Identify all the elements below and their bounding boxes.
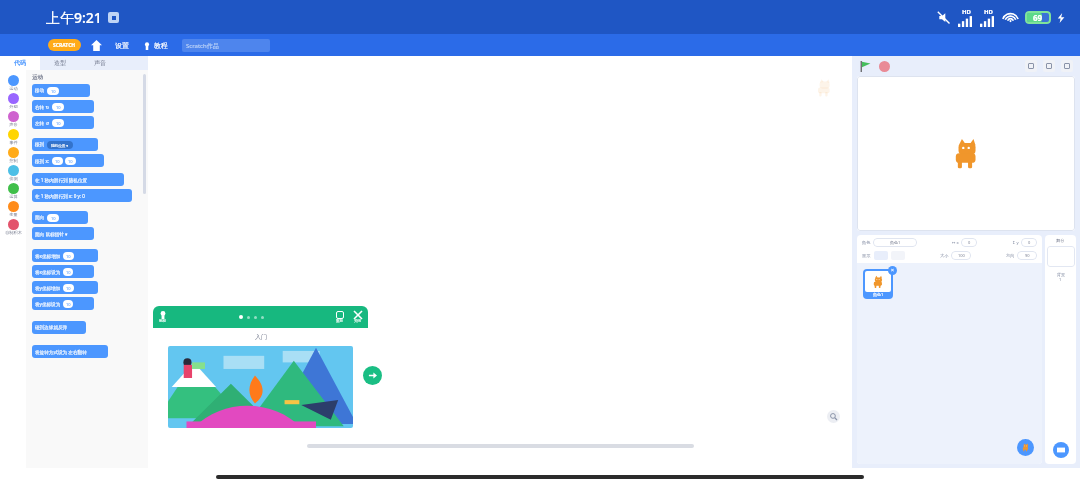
button[interactable]: 将x坐标设为 — [35, 265, 91, 278]
button[interactable]: 0 — [1021, 238, 1037, 247]
button[interactable]: 在 1 秒内滑行到 x: 0 y: 0 — [35, 189, 129, 202]
button[interactable]: Large stage — [1043, 60, 1055, 72]
staticText: 90 — [1025, 253, 1030, 258]
button[interactable]: Fullscreen — [1061, 60, 1073, 72]
button[interactable]: 左转 ↺ — [35, 116, 91, 129]
staticText: HD — [962, 8, 971, 16]
button[interactable]: 将y坐标设为 — [35, 297, 91, 310]
staticText: 显示 — [862, 253, 871, 258]
staticText: 教程 — [154, 41, 168, 50]
button[interactable]: 自制积木 — [0, 219, 26, 235]
staticText: 背景 — [1057, 272, 1065, 277]
staticText: 移到 x: — [35, 158, 50, 164]
button[interactable]: Small stage — [1025, 60, 1037, 72]
button[interactable]: 90 — [1017, 251, 1037, 260]
button[interactable]: 移动 — [35, 84, 87, 97]
staticText: 设置 — [115, 41, 129, 50]
button[interactable]: Close — [354, 311, 362, 324]
button[interactable]: 侦测 — [0, 165, 26, 181]
button[interactable]: 移到 — [35, 138, 95, 151]
button[interactable]: Stop — [879, 61, 890, 72]
button[interactable]: 0 — [961, 238, 977, 247]
staticText: 入门 — [255, 333, 267, 341]
staticText: 将y坐标增加 — [35, 285, 61, 291]
staticText: 0 — [968, 240, 971, 245]
staticText: 关闭 — [354, 319, 362, 324]
button[interactable]: 外观 — [0, 93, 26, 109]
button[interactable]: 右转 ↻ — [35, 100, 91, 113]
staticText: HD — [984, 8, 993, 16]
button[interactable]: 在 1 秒内滑行到 随机位置 — [35, 173, 121, 186]
button[interactable]: Zoom — [827, 410, 840, 423]
button[interactable]: Restart — [336, 311, 344, 324]
button[interactable]: 碰到边缘就反弹 — [35, 321, 83, 334]
staticText: 1 — [1059, 277, 1062, 282]
staticText: 角色1 — [873, 292, 884, 297]
button[interactable]: 将x坐标增加 — [35, 249, 95, 262]
staticText: 10 — [66, 302, 71, 307]
button[interactable]: 将y坐标增加 — [35, 281, 95, 294]
button[interactable]: Delete — [888, 266, 897, 275]
button[interactable]: Home — [89, 38, 103, 52]
staticText: 运算 — [9, 194, 18, 199]
button[interactable]: 造型 — [40, 56, 80, 70]
staticText: ↔ x — [952, 240, 959, 246]
button[interactable] — [1047, 246, 1075, 267]
staticText: 移动 — [35, 88, 45, 94]
staticText: × — [891, 267, 894, 274]
button[interactable]: Scratch作品 — [186, 39, 266, 52]
button[interactable]: 运动 — [0, 75, 26, 91]
staticText: 10 — [56, 121, 61, 126]
staticText: 重新 — [336, 319, 344, 324]
button[interactable]: 变量 — [0, 201, 26, 217]
staticText: 10 — [51, 89, 56, 94]
staticText: 左转 ↺ — [35, 120, 50, 126]
button[interactable]: SCRATCH — [48, 39, 81, 51]
staticText: 控制 — [9, 158, 18, 163]
button[interactable]: 移到 x: — [35, 154, 101, 167]
button[interactable]: Go — [859, 60, 872, 73]
staticText: 角色 — [862, 240, 871, 245]
staticText: 10 — [56, 105, 61, 110]
button[interactable]: 声音 — [80, 56, 120, 70]
button[interactable]: 面向 鼠标指针 ▾ — [35, 227, 91, 240]
staticText: ↕ y — [1012, 240, 1019, 246]
staticText: Scratch作品 — [186, 42, 219, 50]
button[interactable]: 代码 — [0, 56, 40, 70]
staticText: 造型 — [54, 59, 66, 67]
button[interactable]: Add backdrop — [1053, 442, 1069, 458]
staticText: 外观 — [9, 104, 18, 109]
staticText: 面向 鼠标指针 ▾ — [35, 231, 68, 237]
button[interactable]: 角色1 — [873, 238, 917, 247]
staticText: 10 — [55, 159, 60, 164]
button[interactable]: Add sprite — [1017, 439, 1034, 456]
button[interactable]: Next — [363, 366, 382, 385]
button[interactable] — [168, 346, 353, 428]
button[interactable]: 控制 — [0, 147, 26, 163]
button[interactable]: 教程 — [143, 41, 168, 50]
staticText: 在 1 秒内滑行到 x: 0 y: 0 — [35, 193, 85, 199]
staticText: 声音 — [94, 59, 106, 67]
button[interactable]: 100 — [951, 251, 971, 260]
button[interactable]: 角色1 — [865, 271, 891, 297]
staticText: 100 — [958, 253, 965, 258]
staticText: 侦测 — [9, 176, 18, 181]
staticText: 10 — [68, 159, 73, 164]
button[interactable]: 运算 — [0, 183, 26, 199]
button[interactable]: Tutorials — [159, 311, 167, 324]
button[interactable]: 设置 — [115, 41, 129, 50]
staticText: 方向 — [1006, 253, 1015, 258]
staticText: 变量 — [9, 212, 18, 217]
staticText: 代码 — [14, 59, 26, 67]
staticText: 将x坐标增加 — [35, 253, 61, 259]
staticText: 10 — [66, 270, 71, 275]
button[interactable]: 面向 — [35, 211, 85, 224]
staticText: 碰到边缘就反弹 — [35, 325, 68, 331]
button[interactable]: 声音 — [0, 111, 26, 127]
button[interactable]: 将旋转方式设为 左右翻转 — [35, 345, 105, 358]
button[interactable]: 事件 — [0, 129, 26, 145]
staticText: 声音 — [9, 122, 18, 127]
staticText: 舞台 — [1056, 238, 1065, 243]
